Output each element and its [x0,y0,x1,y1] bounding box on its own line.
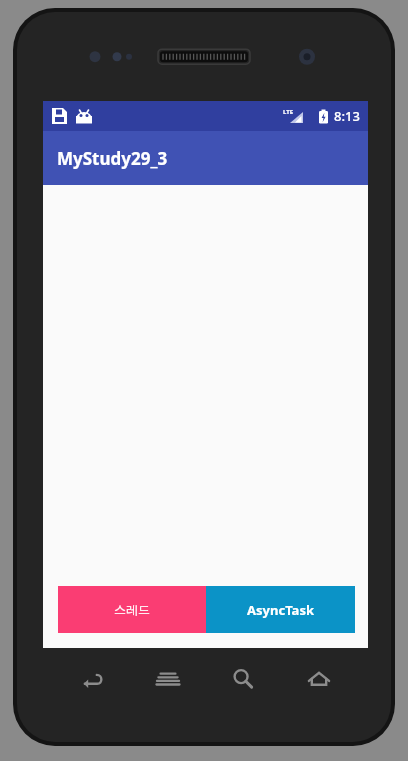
button[interactable]: Home [293,653,345,705]
button[interactable]: 스레드 [58,586,206,633]
staticText: LTE [283,108,294,116]
button[interactable]: Menu [142,653,194,705]
staticText: 8:13 [334,107,360,125]
staticText: AsyncTask [247,601,314,619]
button[interactable]: Search [217,653,269,705]
button[interactable]: Back [66,653,118,705]
button[interactable]: AsyncTask [206,586,355,633]
staticText: 스레드 [114,602,150,617]
staticText: MyStudy29_3 [57,147,168,170]
